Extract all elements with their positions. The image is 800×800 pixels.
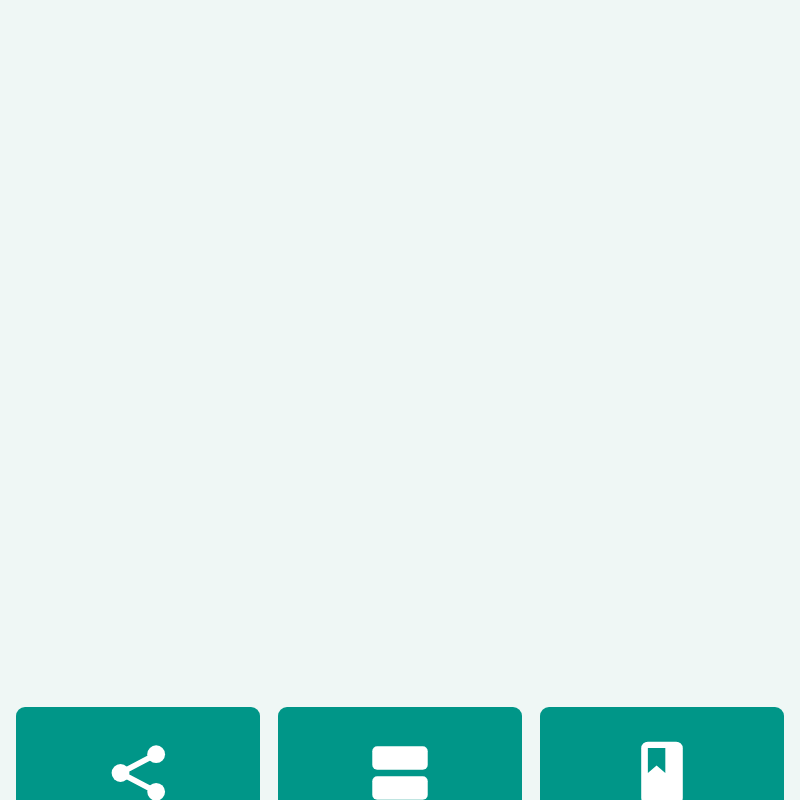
button[interactable]: View list [278, 707, 522, 800]
button[interactable]: Share [16, 707, 260, 800]
button[interactable]: Bookmark [540, 707, 784, 800]
